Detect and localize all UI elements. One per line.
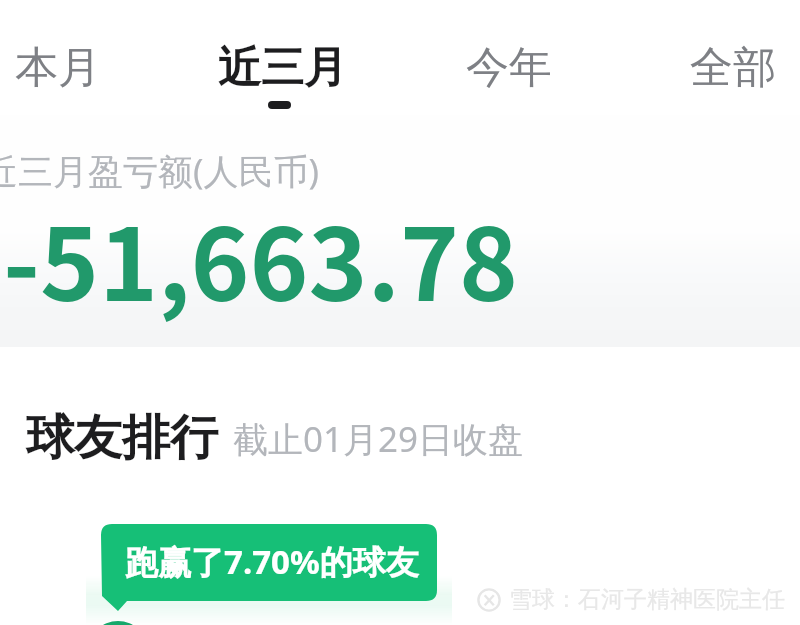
staticText: 球友排行 (26, 408, 218, 468)
staticText: 本月 (15, 41, 101, 95)
button[interactable]: 近三月 (192, 41, 372, 133)
button[interactable]: Your avatar (88, 621, 148, 625)
other: Xueqiu logo (477, 588, 501, 612)
button[interactable]: 球友排行 (26, 408, 524, 468)
staticText: 近三月盈亏额(人民币) (0, 147, 320, 195)
button[interactable]: 今年 (419, 41, 599, 133)
button[interactable]: 本月 (0, 41, 148, 133)
staticText: 跑赢了7.70%的球友 (125, 539, 419, 584)
staticText: 全部 (690, 41, 776, 95)
staticText: 今年 (466, 41, 552, 95)
staticText: 截止01月29日收盘 (233, 415, 524, 463)
button[interactable]: 跑赢了7.70%的球友 (101, 524, 437, 612)
staticText: -51,663.78 (3, 185, 518, 330)
staticText: 近三月 (218, 41, 347, 95)
staticText: 雪球：石河子精神医院主任 (509, 585, 785, 614)
button[interactable]: 全部 (643, 41, 800, 133)
